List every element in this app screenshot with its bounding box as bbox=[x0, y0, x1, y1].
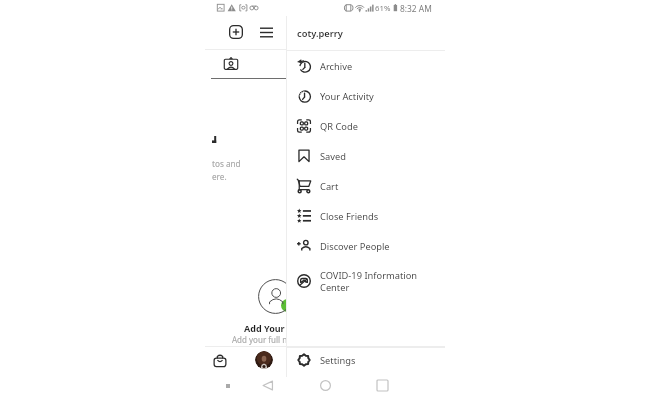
staticText: Archive bbox=[320, 60, 353, 73]
button[interactable]: Profile bbox=[255, 351, 273, 369]
button[interactable]: Name tag tab bbox=[205, 50, 293, 78]
staticText: Settings bbox=[320, 354, 356, 367]
button[interactable]: New post bbox=[222, 18, 250, 46]
staticText: Add Your Name bbox=[244, 322, 314, 334]
button[interactable]: Settings bbox=[286, 345, 445, 375]
button[interactable]: COVID-19 Information Center bbox=[286, 266, 445, 296]
staticText: COVID-19 Information Center bbox=[320, 269, 418, 294]
button[interactable]: Your Activity bbox=[286, 81, 445, 111]
button[interactable]: Saved bbox=[286, 141, 445, 171]
button[interactable]: Close Friends bbox=[286, 201, 445, 231]
staticText: Discover People bbox=[320, 240, 390, 253]
button[interactable]: Archive bbox=[286, 51, 445, 81]
staticText: tos and bbox=[212, 158, 241, 169]
staticText: Saved bbox=[320, 150, 347, 163]
button[interactable]: Shop bbox=[205, 347, 233, 372]
staticText: 8:32 AM bbox=[400, 3, 432, 14]
staticText: ere. bbox=[212, 171, 227, 182]
staticText: QR Code bbox=[320, 120, 358, 133]
button[interactable]: Discover People bbox=[286, 231, 445, 261]
staticText: Your Activity bbox=[320, 90, 374, 103]
button[interactable]: Menu bbox=[253, 18, 280, 45]
staticText: coty.perry bbox=[297, 27, 343, 40]
staticText: Cart bbox=[320, 180, 339, 193]
staticText: Add your full name so bbox=[232, 334, 315, 345]
staticText: 61% bbox=[375, 3, 391, 14]
staticText: Close Friends bbox=[320, 210, 379, 223]
button[interactable]: QR Code bbox=[286, 111, 445, 141]
button[interactable]: Cart bbox=[286, 171, 445, 201]
